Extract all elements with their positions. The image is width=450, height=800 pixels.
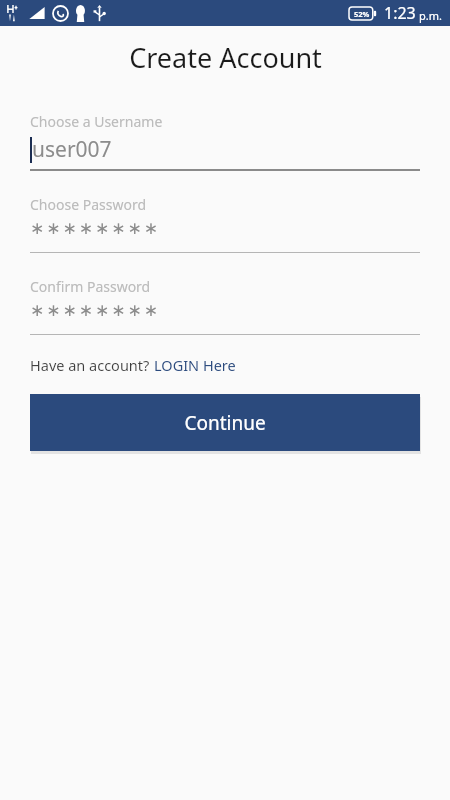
staticText: Create Account: [129, 39, 322, 76]
staticText: 52%: [354, 9, 370, 19]
staticText: 1:23: [384, 2, 416, 24]
staticText: Choose Password: [30, 195, 147, 214]
button[interactable]: Confirm Password: [30, 277, 420, 335]
button[interactable]: Choose a Username: [30, 112, 420, 171]
staticText: ∗∗∗∗∗∗∗∗: [30, 218, 160, 238]
staticText: Choose a Username: [30, 112, 163, 131]
staticText: Have an account?: [30, 355, 154, 375]
button[interactable]: Have an account?: [30, 353, 236, 377]
button[interactable]: Continue: [30, 394, 420, 451]
staticText: Confirm Password: [30, 277, 151, 296]
staticText: LOGIN Here: [154, 355, 236, 375]
staticText: ∗∗∗∗∗∗∗∗: [30, 300, 160, 320]
button[interactable]: Choose Password: [30, 195, 420, 253]
staticText: p.m.: [419, 8, 442, 23]
staticText: Continue: [184, 410, 266, 436]
staticText: user007: [32, 135, 112, 164]
